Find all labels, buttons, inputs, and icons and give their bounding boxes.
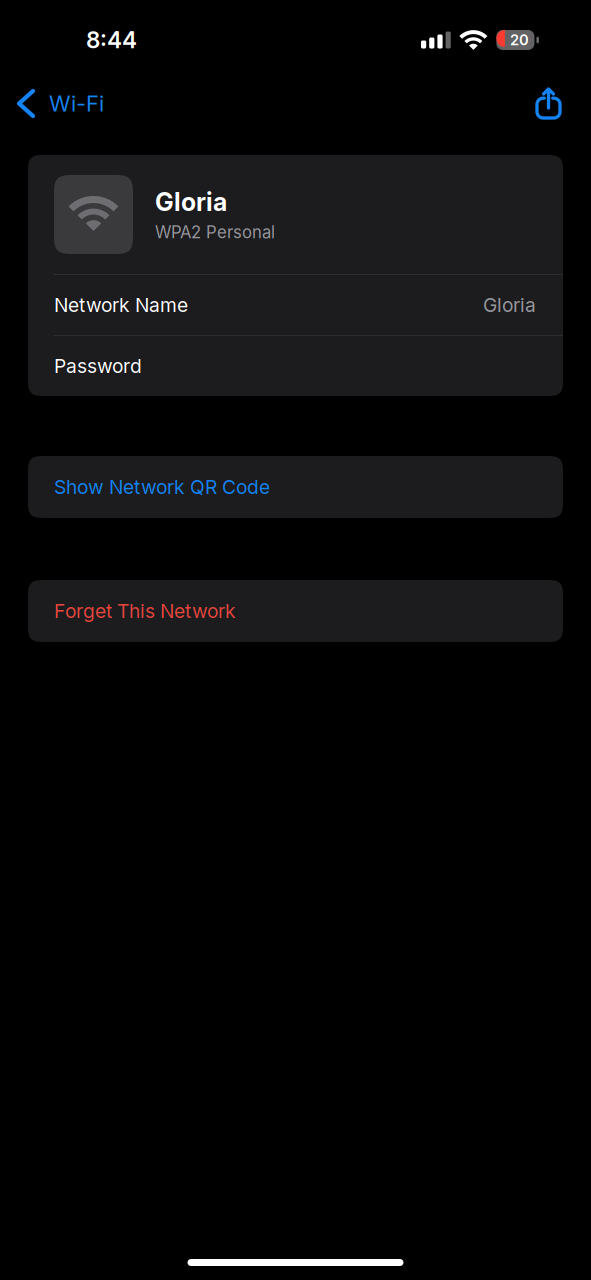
staticText: Forget This Network bbox=[54, 599, 236, 623]
staticText: 8:44 bbox=[86, 26, 137, 54]
staticText: Gloria bbox=[483, 293, 536, 317]
staticText: 20 bbox=[510, 31, 529, 49]
button[interactable]: Show Network QR Code bbox=[28, 456, 563, 518]
button[interactable]: Network Name bbox=[28, 275, 563, 335]
button[interactable]: Forget This Network bbox=[28, 580, 563, 642]
staticText: Password bbox=[54, 354, 142, 378]
button[interactable]: Share bbox=[519, 80, 578, 127]
staticText: Network Name bbox=[54, 293, 188, 317]
staticText: Show Network QR Code bbox=[54, 475, 270, 499]
staticText: Wi-Fi bbox=[49, 90, 104, 117]
staticText: Gloria bbox=[155, 187, 227, 217]
staticText: WPA2 Personal bbox=[155, 222, 275, 242]
button[interactable]: Wi-Fi bbox=[0, 80, 116, 127]
button[interactable]: Password bbox=[28, 336, 563, 396]
